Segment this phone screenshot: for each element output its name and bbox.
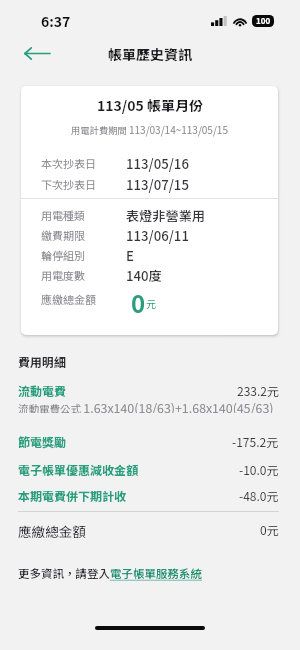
staticText: 0元 — [260, 521, 279, 538]
staticText: 用電計費期間 — [71, 123, 129, 136]
staticText: 用電度數 — [41, 267, 126, 283]
staticText: 元 — [146, 296, 156, 310]
staticText: 帳單歷史資訊 — [108, 44, 192, 64]
staticText: 6:37 — [41, 11, 71, 31]
staticText: 應繳總金額 — [18, 521, 86, 538]
staticText: 下次抄表日 — [41, 176, 126, 192]
staticText: 113/06/11 — [126, 226, 189, 245]
staticText: 輪停組別 — [41, 247, 126, 263]
staticText: 費用明細 — [18, 353, 67, 370]
staticText: 表燈非營業用 — [126, 206, 206, 225]
staticText: 140度 — [126, 266, 162, 285]
staticText: -48.0元 — [239, 487, 279, 504]
staticText: 應繳總金額 — [41, 291, 131, 307]
staticText: 0 — [131, 285, 146, 313]
staticText: 233.2元 — [237, 382, 279, 399]
staticText: 本期電費併下期計收 — [18, 487, 127, 504]
staticText: -10.0元 — [239, 461, 279, 478]
staticText: 用電種類 — [41, 207, 126, 223]
staticText: -175.2元 — [232, 433, 279, 450]
staticText: 本次抄表日 — [41, 155, 126, 171]
staticText: 113/07/15 — [126, 175, 189, 194]
staticText: 更多資訊，請登入電子帳單服務系統 — [18, 565, 202, 582]
staticText: 電子帳單優惠減收金額 — [18, 461, 139, 478]
staticText: 113/05 帳單月份 — [97, 95, 203, 115]
staticText: 流動電費 — [18, 382, 67, 399]
staticText: E — [126, 246, 134, 265]
staticText: 流動電費公式 1.63x140(18/63)+1.68x140(45/63) — [18, 399, 274, 413]
staticText: 113/05/16 — [126, 154, 189, 173]
staticText: 100 — [256, 15, 271, 27]
staticText: 繳費期限 — [41, 227, 126, 243]
button[interactable]: Back — [20, 36, 54, 70]
staticText: 113/03/14~113/05/15 — [129, 122, 228, 136]
staticText: 節電獎勵 — [18, 433, 67, 450]
